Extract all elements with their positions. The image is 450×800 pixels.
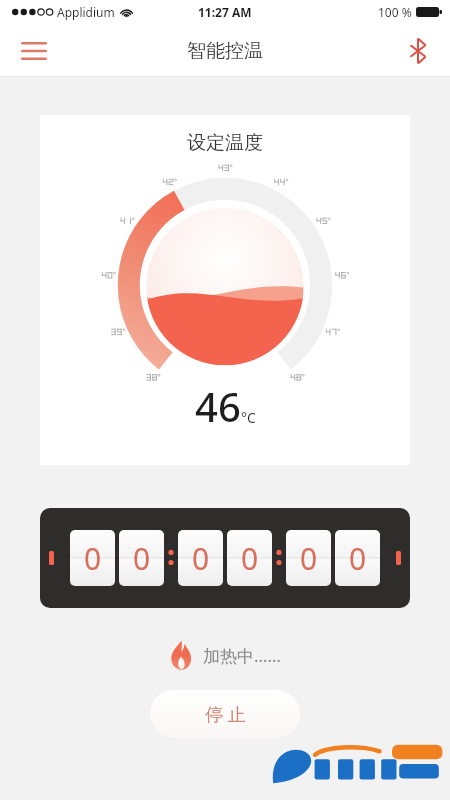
staticText: 加热中…… — [203, 644, 281, 667]
staticText: 智能控温 — [187, 39, 263, 63]
staticText: 0 — [192, 538, 210, 579]
staticText: 0 — [133, 538, 151, 579]
button[interactable]: Bluetooth — [396, 29, 440, 73]
button[interactable]: Menu — [12, 29, 56, 73]
staticText: 46 — [195, 379, 241, 433]
staticText: 0 — [349, 538, 367, 579]
button[interactable]: 0 — [40, 508, 410, 608]
staticText: 0 — [241, 538, 259, 579]
staticText: 100 % — [378, 4, 412, 20]
staticText: 停 止 — [205, 702, 246, 727]
button[interactable]: 停 止 — [150, 690, 300, 738]
button[interactable]: 设定温度 — [40, 115, 410, 465]
staticText: 0 — [300, 538, 318, 579]
staticText: Applidium — [57, 4, 115, 20]
staticText: 11:27 AM — [198, 4, 252, 20]
staticText: °C — [241, 408, 256, 427]
staticText: 0 — [84, 538, 102, 579]
staticText: 设定温度 — [187, 131, 263, 155]
